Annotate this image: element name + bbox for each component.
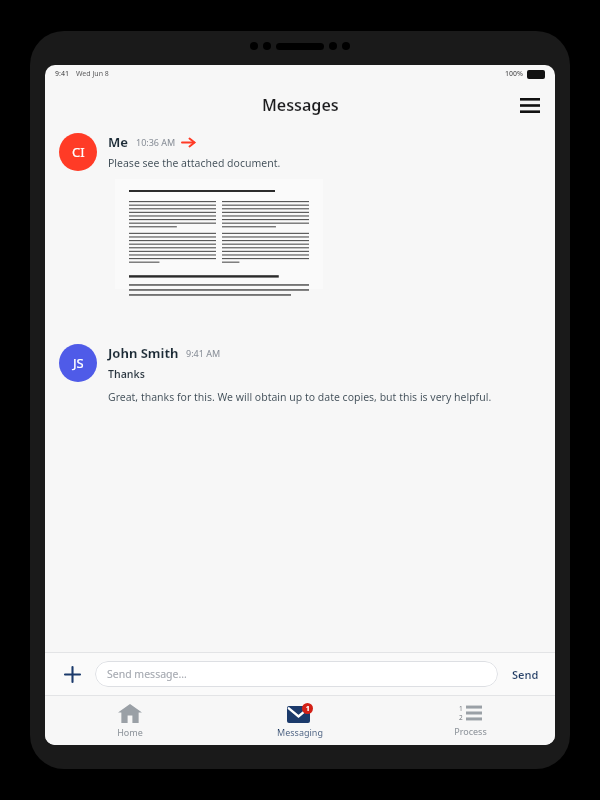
button[interactable]: Menu bbox=[515, 90, 545, 120]
button[interactable]: Send message... bbox=[95, 661, 498, 687]
staticText: 100% bbox=[505, 69, 523, 79]
staticText: 2 bbox=[459, 713, 463, 722]
staticText: 10:36 AM bbox=[136, 136, 176, 148]
staticText: Messages bbox=[262, 94, 339, 116]
staticText: 1 bbox=[459, 704, 463, 713]
button[interactable]: Attached document preview bbox=[115, 179, 323, 289]
staticText: 1 bbox=[306, 704, 310, 713]
button[interactable]: 1 bbox=[215, 696, 385, 745]
staticText: Messaging bbox=[277, 726, 323, 738]
button[interactable]: JS bbox=[59, 344, 97, 382]
staticText: Send message... bbox=[107, 667, 187, 681]
staticText: Me bbox=[108, 133, 129, 151]
button[interactable]: CI bbox=[59, 133, 97, 171]
staticText: Send bbox=[512, 667, 539, 682]
staticText: Please see the attached document. bbox=[108, 156, 281, 170]
button[interactable]: Add attachment bbox=[59, 661, 85, 687]
staticText: John Smith bbox=[108, 344, 179, 362]
staticText: Home bbox=[117, 726, 143, 738]
staticText: Process bbox=[454, 725, 487, 737]
button[interactable]: Send bbox=[510, 662, 541, 687]
staticText: JS bbox=[73, 354, 84, 372]
staticText: Great, thanks for this. We will obtain u… bbox=[108, 390, 492, 404]
button[interactable]: 1 bbox=[385, 696, 555, 745]
staticText: Thanks bbox=[108, 367, 145, 381]
staticText: 9:41 AM bbox=[186, 347, 221, 359]
staticText: 9:41 bbox=[55, 69, 69, 79]
button[interactable]: Home bbox=[45, 696, 215, 745]
staticText: CI bbox=[72, 143, 85, 161]
staticText: Wed Jun 8 bbox=[76, 69, 109, 79]
